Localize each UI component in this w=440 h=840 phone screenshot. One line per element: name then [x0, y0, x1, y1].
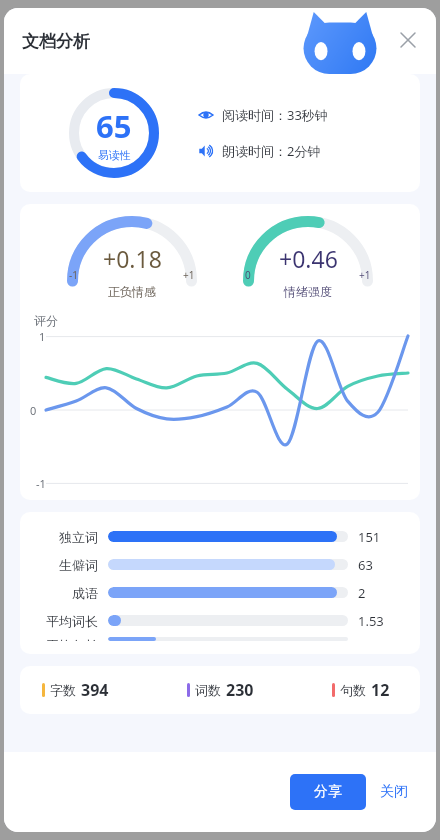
staticText: 230: [226, 679, 254, 701]
staticText: 关闭: [380, 783, 408, 801]
staticText: 字数: [50, 682, 76, 698]
staticText: +0.46: [279, 243, 338, 274]
staticText: 63: [358, 556, 373, 574]
staticText: -1: [36, 476, 46, 491]
staticText: 1: [39, 329, 46, 344]
staticText: 情绪强度: [284, 284, 332, 299]
staticText: 平均句长: [32, 637, 98, 641]
staticText: 句数: [340, 682, 366, 698]
staticText: 394: [81, 679, 109, 701]
staticText: 0: [30, 403, 37, 418]
staticText: 平均词长: [32, 613, 98, 629]
staticText: 阅读时间：33秒钟: [222, 106, 328, 124]
staticText: +1: [183, 268, 195, 282]
staticText: +0.18: [103, 243, 162, 274]
button[interactable]: 关闭: [392, 24, 424, 56]
staticText: 易读性: [98, 148, 131, 162]
staticText: 词数: [195, 682, 221, 698]
staticText: 正负情感: [108, 284, 156, 299]
staticText: 2: [358, 584, 366, 602]
staticText: 生僻词: [32, 557, 98, 573]
staticText: 朗读时间：2分钟: [222, 142, 321, 160]
staticText: 独立词: [32, 529, 98, 545]
staticText: 1.53: [358, 612, 384, 630]
staticText: -1: [69, 268, 78, 282]
staticText: 65: [96, 105, 132, 147]
staticText: +1: [359, 268, 371, 282]
button[interactable]: 分享: [290, 774, 366, 810]
staticText: 0: [245, 268, 251, 282]
staticText: 文档分析: [22, 31, 90, 52]
staticText: 评分: [34, 313, 58, 328]
staticText: 151: [358, 528, 381, 546]
staticText: 分享: [314, 783, 342, 801]
staticText: 12: [371, 679, 390, 701]
staticText: 成语: [32, 585, 98, 601]
button[interactable]: 关闭: [366, 774, 422, 810]
